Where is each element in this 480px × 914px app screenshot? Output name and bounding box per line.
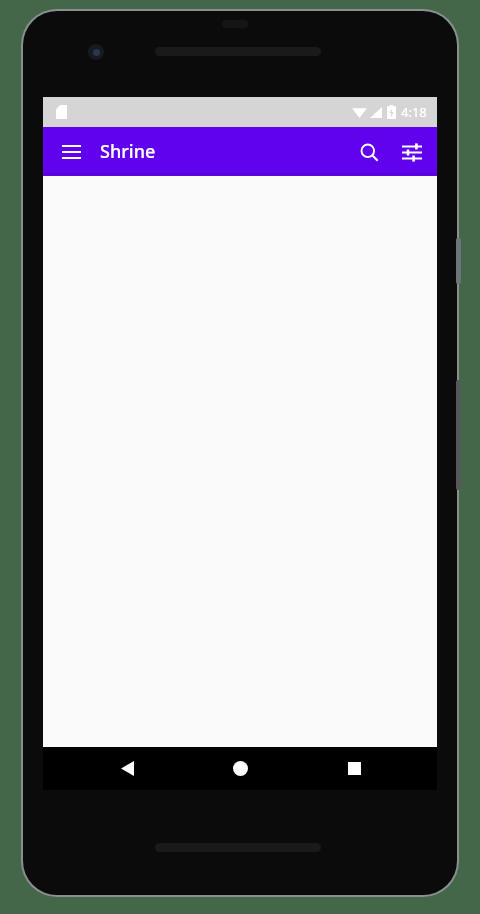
button[interactable]: Recent apps — [324, 747, 384, 790]
button[interactable]: Filter — [391, 131, 433, 173]
button[interactable]: Home — [210, 747, 270, 790]
button[interactable]: Search — [348, 131, 390, 173]
button[interactable]: Open navigation menu — [51, 132, 91, 172]
staticText: Shrine — [100, 139, 156, 164]
button[interactable]: Back — [97, 747, 157, 790]
staticText: 4:18 — [401, 103, 427, 121]
